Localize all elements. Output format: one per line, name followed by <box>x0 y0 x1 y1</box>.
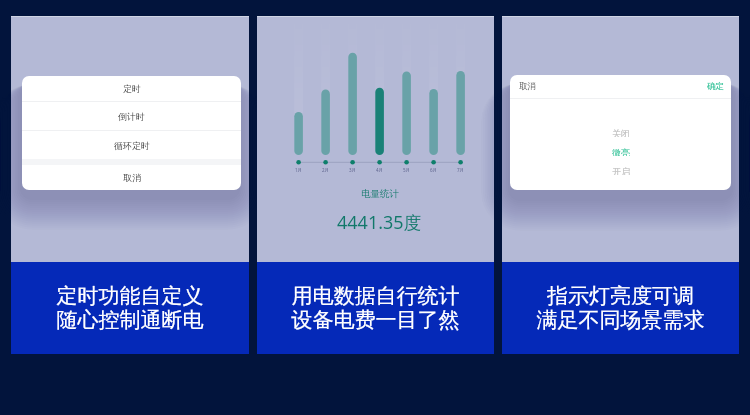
staticText: 定时功能自定义 随心控制通断电 <box>11 283 249 333</box>
staticText: 开启 <box>612 166 630 175</box>
staticText: 电量统计 <box>361 188 399 200</box>
button[interactable]: 微亮 <box>510 147 731 156</box>
staticText: 4月 <box>376 167 384 173</box>
button[interactable]: 取消 <box>519 75 536 98</box>
staticText: 1月 <box>295 167 303 173</box>
button[interactable]: 关闭 <box>510 128 731 137</box>
staticText: 指示灯亮度可调 满足不同场景需求 <box>502 283 739 333</box>
staticText: 倒计时 <box>118 111 145 122</box>
staticText: 关闭 <box>612 128 630 137</box>
staticText: 确定 <box>707 81 724 92</box>
staticText: 4441.35度 <box>337 210 422 235</box>
staticText: 取消 <box>123 172 141 183</box>
staticText: 2月 <box>322 167 330 173</box>
staticText: 5月 <box>403 167 411 173</box>
button[interactable]: 确定 <box>707 75 724 98</box>
staticText: 微亮 <box>612 147 630 156</box>
button[interactable]: 取消 <box>22 165 241 190</box>
staticText: 7月 <box>457 167 465 173</box>
staticText: 循环定时 <box>114 140 150 151</box>
staticText: 用电数据自行统计 设备电费一目了然 <box>257 283 494 333</box>
staticText: 定时 <box>123 83 141 94</box>
button[interactable]: 倒计时 <box>22 102 241 130</box>
staticText: 取消 <box>519 81 536 92</box>
button[interactable]: 开启 <box>510 166 731 175</box>
staticText: 3月 <box>349 167 357 173</box>
staticText: 6月 <box>430 167 438 173</box>
button[interactable]: 定时 <box>22 76 241 101</box>
button[interactable]: 循环定时 <box>22 131 241 159</box>
